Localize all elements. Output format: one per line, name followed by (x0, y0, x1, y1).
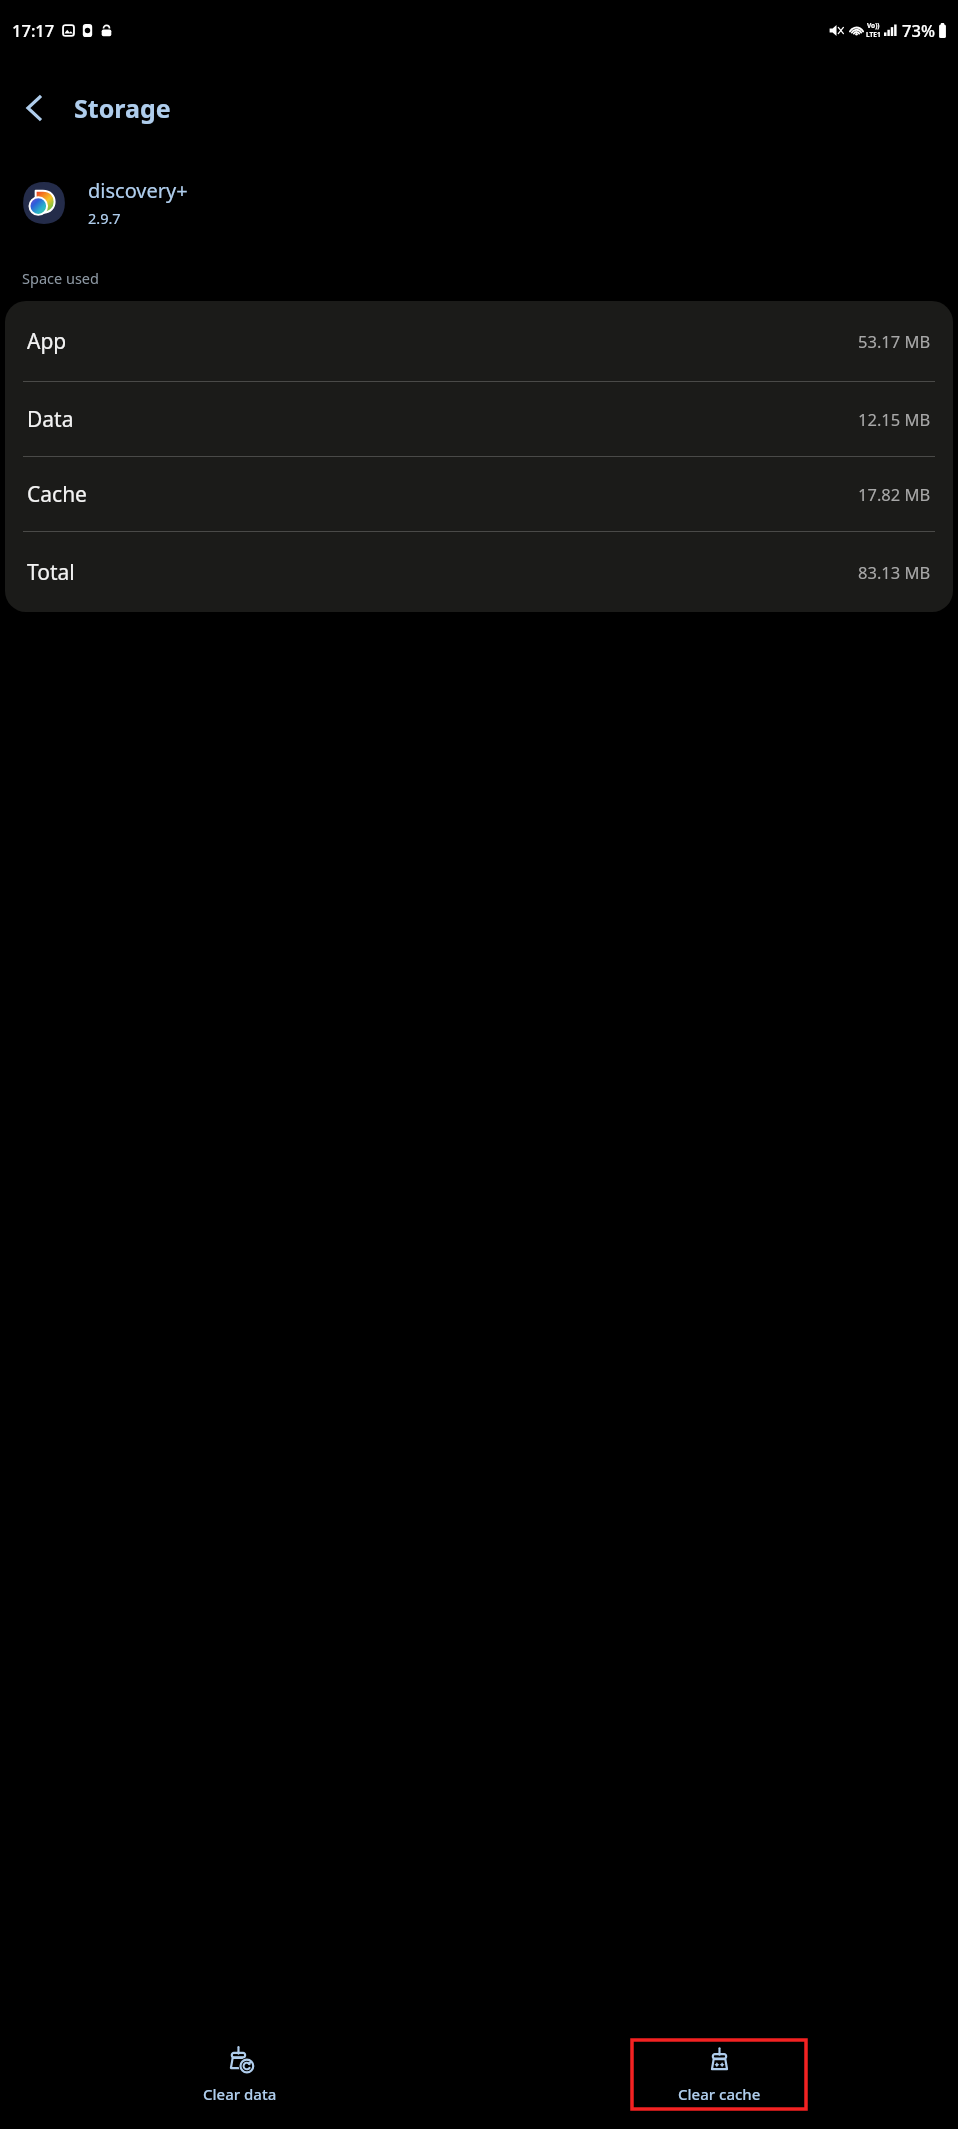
staticText: Total (27, 558, 75, 587)
button[interactable]: Total (5, 532, 953, 612)
staticText: Data (27, 405, 74, 434)
staticText: 53.17 MB (858, 330, 931, 352)
staticText: 17:17 (12, 19, 55, 41)
staticText: 73% (902, 19, 935, 41)
button[interactable]: App (5, 301, 953, 381)
staticText: Cache (27, 480, 87, 509)
staticText: Storage (74, 91, 171, 125)
staticText: discovery+ (88, 177, 188, 204)
staticText: App (27, 327, 67, 356)
staticText: Clear cache (678, 2084, 761, 2104)
staticText: Clear data (203, 2084, 277, 2104)
button[interactable]: Cache (5, 457, 953, 531)
staticText: 83.13 MB (858, 561, 931, 583)
button[interactable]: Clear data (153, 2040, 327, 2109)
staticText: Space used (22, 268, 99, 288)
button[interactable]: Clear cache (632, 2040, 806, 2109)
staticText: 17.82 MB (858, 483, 931, 505)
staticText: 2.9.7 (88, 208, 121, 228)
button[interactable]: Back (8, 81, 62, 135)
staticText: Vo)) (867, 21, 880, 30)
staticText: 12.15 MB (858, 408, 931, 430)
button[interactable]: Data (5, 382, 953, 456)
staticText: LTE1 (866, 30, 881, 39)
